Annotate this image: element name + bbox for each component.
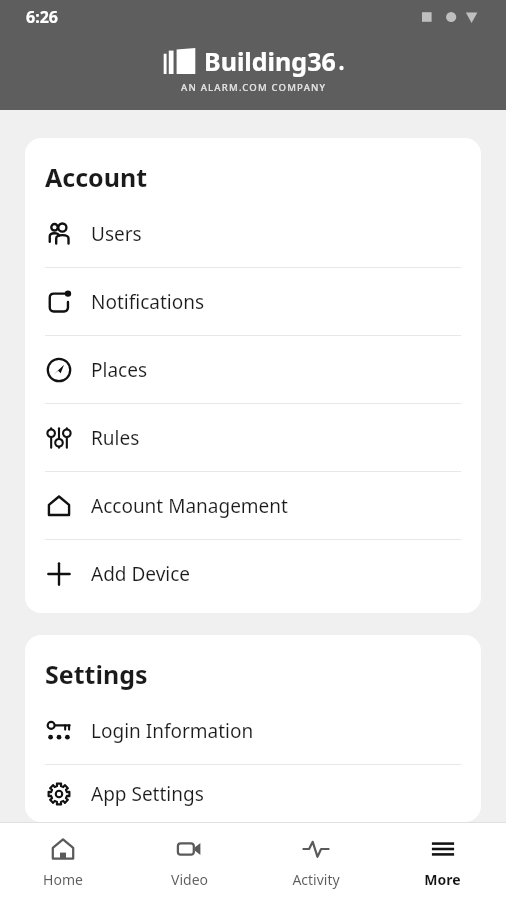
staticText: Add Device [91,561,191,587]
button[interactable]: Video [126,823,252,900]
staticText: Login Information [91,718,254,744]
staticText: Rules [91,425,140,451]
staticText: Account Management [91,493,288,519]
button[interactable]: App Settings [25,765,481,822]
staticText: 6:26 [26,6,58,28]
staticText: Notifications [91,289,205,315]
staticText: Account [45,160,148,194]
staticText: App Settings [91,781,204,807]
staticText: Activity [292,870,340,889]
button[interactable]: More [379,823,506,900]
button[interactable]: Rules [25,404,481,471]
button[interactable]: Places [25,336,481,403]
staticText: Places [91,357,147,383]
button[interactable]: Account Management [25,472,481,539]
staticText: Users [91,221,142,247]
staticText: Settings [45,657,148,691]
button[interactable]: Add Device [25,540,481,607]
staticText: AN ALARM.COM COMPANY [181,81,327,94]
staticText: More [424,870,461,889]
button[interactable]: Users [25,200,481,267]
button[interactable]: Activity [252,823,379,900]
staticText: Building36 [204,44,336,78]
staticText: Video [171,870,208,889]
button[interactable]: Login Information [25,697,481,764]
staticText: Home [43,870,83,889]
button[interactable]: Home [0,823,126,900]
button[interactable]: Notifications [25,268,481,335]
